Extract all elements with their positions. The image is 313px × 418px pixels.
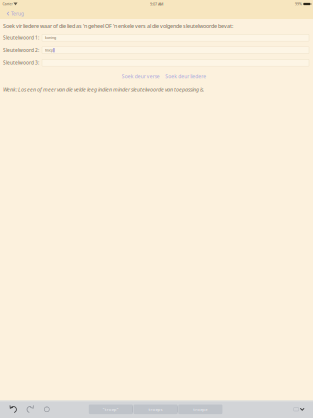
button[interactable]: Redo (26, 405, 34, 413)
staticText: Soek deur liedere (165, 73, 206, 80)
button[interactable]: Soek deur liedere (165, 73, 206, 80)
staticText: Terug (11, 10, 24, 17)
button[interactable]: Soek deur verse (122, 73, 160, 80)
staticText: koning (45, 35, 56, 40)
button[interactable]: Terug (0, 8, 29, 19)
button[interactable]: Dismiss keyboard (294, 408, 313, 411)
button[interactable]: troepe (178, 404, 222, 414)
staticText: troepe (193, 406, 207, 412)
staticText: 99% (295, 2, 302, 6)
staticText: Soek deur verse (122, 73, 160, 80)
staticText: “troep” (103, 406, 119, 412)
staticText: troeps (149, 406, 163, 412)
staticText: Wenk: Los een of meer van die velde leeg… (3, 86, 204, 93)
button[interactable]: troeps (133, 404, 178, 414)
staticText: troep (45, 48, 53, 53)
staticText: Sleutelwoord 2: (3, 47, 39, 53)
staticText: 9:07 AM (150, 1, 163, 7)
staticText: Sleutelwoord 1: (3, 34, 39, 41)
button[interactable]: Undo (9, 405, 18, 413)
staticText: Soek vir liedere waar of die lied as 'n … (3, 22, 233, 30)
staticText: Sleutelwoord 3: (3, 59, 39, 66)
button[interactable]: “troep” (89, 404, 133, 414)
staticText: Carrier (2, 2, 12, 6)
button[interactable]: Paste (44, 406, 50, 412)
